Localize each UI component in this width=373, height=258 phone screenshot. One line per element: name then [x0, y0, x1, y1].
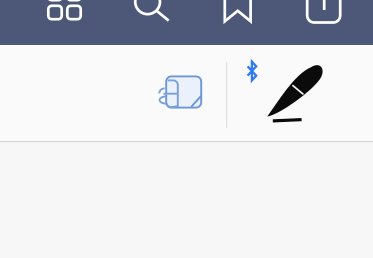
button[interactable]: Scribble to text — [0, 45, 373, 141]
button[interactable]: Page thumbnails — [0, 0, 373, 45]
button[interactable]: Search — [0, 0, 373, 45]
button[interactable]: Bookmarks — [0, 0, 373, 45]
button[interactable]: Share — [0, 0, 373, 45]
button[interactable]: Pen tool — [0, 45, 373, 141]
